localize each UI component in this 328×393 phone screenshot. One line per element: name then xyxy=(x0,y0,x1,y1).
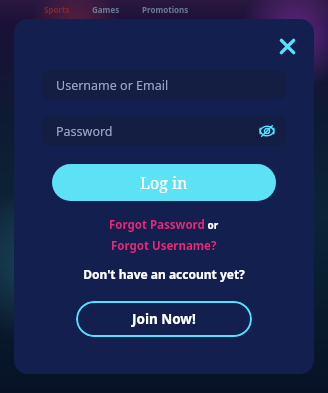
staticText: Promotions xyxy=(142,4,189,15)
button[interactable]: Log in xyxy=(52,164,276,201)
staticText: Sports xyxy=(44,4,70,15)
button[interactable]: Close xyxy=(272,31,302,61)
staticText: or xyxy=(205,218,219,232)
staticText: Password xyxy=(56,123,113,140)
button[interactable]: Forgot Password xyxy=(109,217,205,233)
staticText: Username or Email xyxy=(56,77,169,94)
staticText: Forgot Password xyxy=(109,217,205,233)
button[interactable]: Password xyxy=(42,116,286,146)
button[interactable]: Forgot Username? xyxy=(111,238,217,254)
staticText: Forgot Username? xyxy=(111,238,217,254)
staticText: Don't have an account yet? xyxy=(42,266,286,282)
button[interactable]: Show password xyxy=(256,120,278,142)
button[interactable]: Join Now! xyxy=(76,301,252,337)
staticText: Games xyxy=(92,4,120,15)
staticText: Log in xyxy=(140,172,188,194)
staticText: Join Now! xyxy=(132,310,196,328)
button[interactable]: Username or Email xyxy=(42,70,286,100)
